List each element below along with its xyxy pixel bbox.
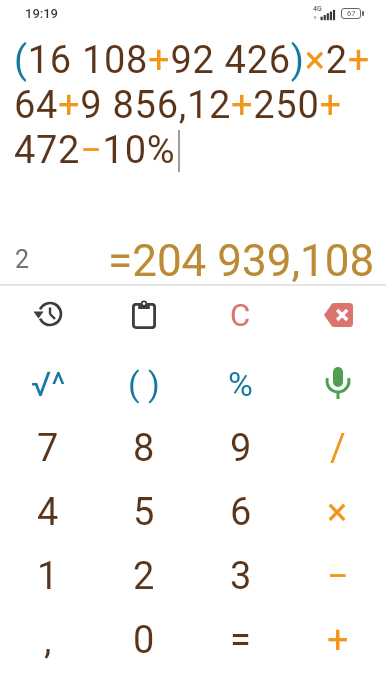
button[interactable]: / [289, 416, 386, 480]
staticText: 64+9 856,12+250+ [14, 83, 342, 128]
staticText: 19:19 [25, 6, 59, 21]
staticText: =204 939,108 [108, 235, 375, 287]
staticText: − [327, 554, 349, 599]
staticText: + [327, 618, 349, 663]
staticText: 6 [230, 490, 252, 535]
staticText: 4G [313, 5, 322, 13]
staticText: 0 [133, 618, 155, 663]
button[interactable]: 6 [192, 480, 289, 544]
button[interactable]: 0 [96, 608, 192, 672]
button[interactable]: 5 [96, 480, 192, 544]
staticText: 5 [133, 490, 155, 535]
button[interactable]: 2 [96, 544, 192, 608]
button[interactable] [289, 351, 386, 416]
button[interactable]: × [289, 480, 386, 544]
staticText: 67 [347, 9, 356, 18]
staticText: √^ [31, 364, 66, 404]
button[interactable]: − [289, 544, 386, 608]
staticText: 1 [37, 554, 59, 599]
staticText: 7 [37, 426, 59, 471]
button[interactable]: , [0, 608, 96, 672]
button[interactable]: 3 [192, 544, 289, 608]
button[interactable] [96, 286, 192, 351]
button[interactable]: 8 [96, 416, 192, 480]
staticText: = [230, 618, 251, 663]
staticText: 2 [15, 245, 30, 274]
staticText: 472−10% [14, 128, 176, 173]
staticText: 3 [230, 554, 252, 599]
button[interactable]: + [289, 608, 386, 672]
button[interactable]: 1 [0, 544, 96, 608]
staticText: (16 108+92 426)×2+ [14, 38, 371, 83]
staticText: C [230, 297, 251, 333]
button[interactable]: √^ [0, 351, 96, 416]
button[interactable]: C [192, 286, 289, 351]
button[interactable]: 7 [0, 416, 96, 480]
staticText: / [330, 426, 346, 471]
button[interactable]: = [192, 608, 289, 672]
button[interactable] [289, 286, 386, 351]
button[interactable]: ( ) [96, 351, 192, 416]
button[interactable]: 9 [192, 416, 289, 480]
staticText: 9 [230, 426, 252, 471]
staticText: , [44, 618, 52, 663]
staticText: % [228, 364, 253, 404]
staticText: 4 [37, 490, 59, 535]
staticText: × [327, 490, 348, 535]
staticText: ( ) [128, 364, 160, 404]
button[interactable] [0, 286, 96, 351]
staticText: 8 [133, 426, 155, 471]
button[interactable]: % [192, 351, 289, 416]
staticText: 2 [133, 554, 155, 599]
button[interactable]: 4 [0, 480, 96, 544]
